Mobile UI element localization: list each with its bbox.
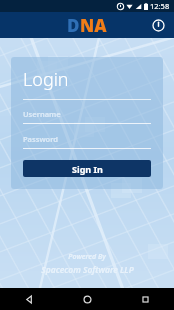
staticText: D	[67, 14, 80, 37]
button[interactable]: Home	[58, 288, 116, 310]
staticText: 12:58	[150, 1, 170, 11]
staticText: Login	[23, 67, 69, 92]
button[interactable]: Back	[0, 288, 58, 310]
button[interactable]: Power	[148, 15, 168, 35]
staticText: Powered By	[68, 252, 106, 262]
staticText: NA	[80, 14, 107, 37]
staticText: Username	[23, 109, 61, 119]
staticText: Password	[23, 134, 59, 144]
button[interactable]: Sign In	[23, 160, 151, 177]
staticText: Spacecom Software LLP	[41, 264, 134, 276]
staticText: Sign In	[72, 163, 103, 175]
button[interactable]: Recent apps	[116, 288, 174, 310]
button[interactable]: Password	[23, 134, 151, 149]
button[interactable]: Username	[23, 109, 151, 124]
